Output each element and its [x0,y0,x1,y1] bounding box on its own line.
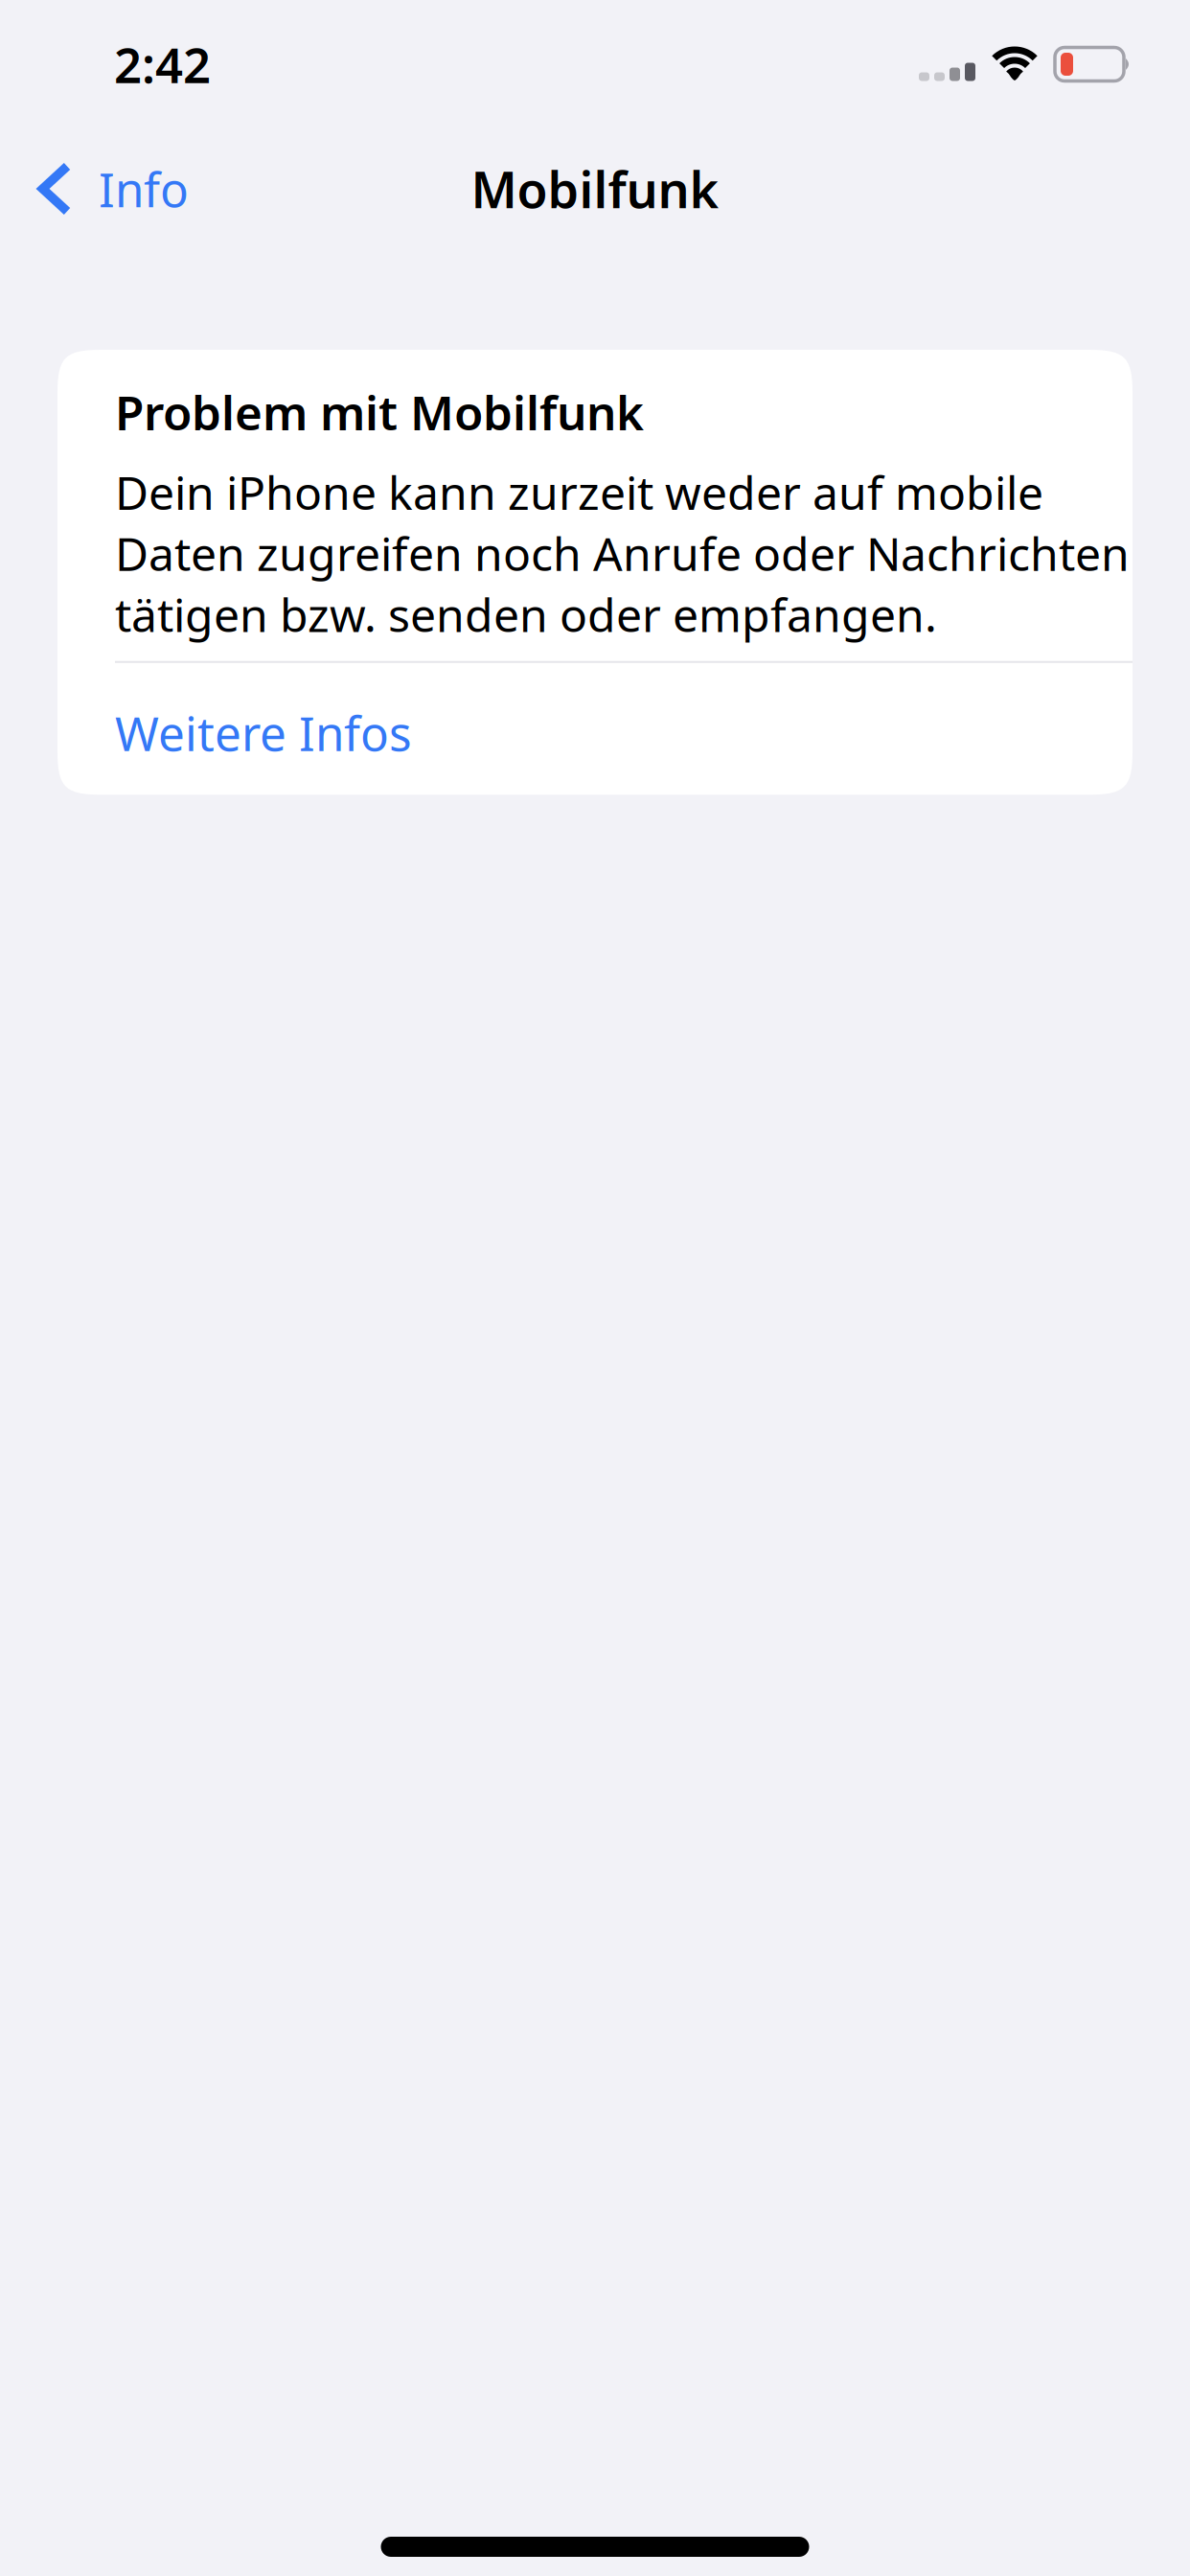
button[interactable]: Back [0,157,189,220]
staticText: Dein iPhone kann zurzeit weder auf mobil… [115,461,1043,522]
staticText: 2:42 [114,32,211,97]
button[interactable]: Weitere Infos [115,663,412,795]
staticText: tätigen bzw. senden oder empfangen. [115,584,937,645]
staticText: Mobilfunk [471,156,719,222]
staticText: Problem mit Mobilfunk [115,380,644,443]
staticText: Weitere Infos [115,701,412,764]
staticText: Info [99,157,189,220]
staticText: Daten zugreifen noch Anrufe oder Nachric… [115,523,1130,584]
